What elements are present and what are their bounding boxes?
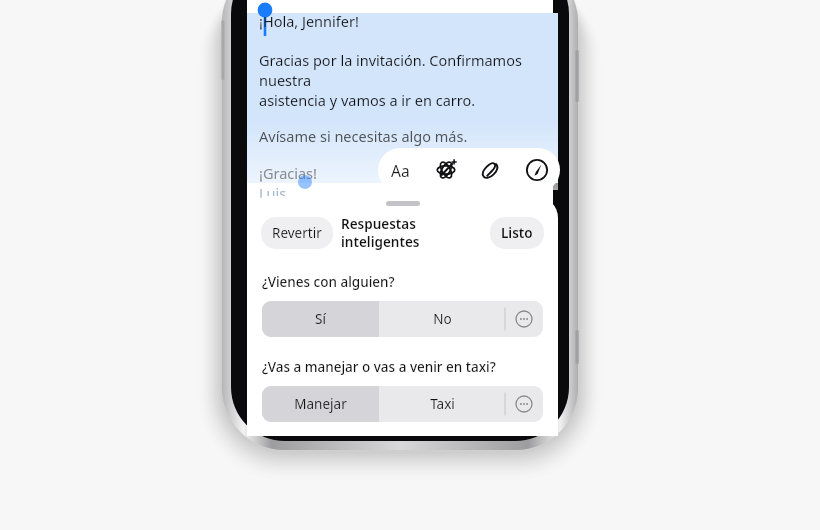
staticText: Luis — [259, 183, 287, 203]
staticText: Revertir — [272, 224, 322, 242]
staticText: ¡Hola, Jennifer! — [259, 11, 359, 31]
button[interactable]: Listo — [490, 217, 544, 249]
staticText: ¿Vienes con alguien? — [262, 273, 395, 291]
button[interactable]: Sí — [262, 301, 379, 337]
button[interactable]: Text format — [378, 148, 423, 192]
button[interactable]: No — [379, 301, 505, 337]
staticText: ¿Vas a manejar o vas a venir en taxi? — [262, 358, 496, 376]
staticText: Avísame si necesitas algo más. — [259, 126, 468, 146]
staticText: Gracias por la invitación. Confirmamos n… — [259, 50, 558, 110]
button[interactable]: Manejar — [262, 386, 379, 422]
button[interactable]: Attach — [468, 148, 514, 192]
button[interactable]: Markup — [514, 148, 560, 192]
staticText: Aa — [391, 160, 410, 181]
staticText: ¡Gracias! — [259, 163, 317, 183]
staticText: No — [433, 310, 452, 328]
staticText: Sí — [315, 310, 326, 328]
staticText: Respuestas inteligentes — [341, 215, 482, 251]
staticText: Manejar — [294, 395, 347, 413]
staticText: Taxi — [430, 395, 455, 413]
button[interactable]: Revertir — [261, 217, 333, 249]
staticText: Listo — [501, 224, 533, 242]
button[interactable]: Apple Intelligence — [423, 148, 468, 192]
button[interactable]: More options — [505, 386, 543, 422]
button[interactable]: More options — [505, 301, 543, 337]
button[interactable]: Taxi — [379, 386, 505, 422]
